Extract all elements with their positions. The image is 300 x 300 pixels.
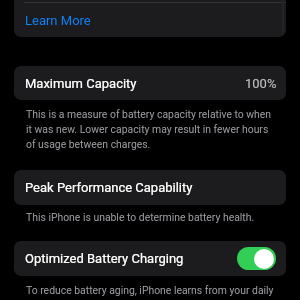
staticText: 100% [245,76,277,91]
button[interactable]: Learn More [14,0,286,37]
button[interactable]: Maximum Capacity [14,66,286,100]
staticText: This is a measure of battery capacity re… [26,108,275,150]
button[interactable]: Peak Performance Capability [14,170,286,205]
staticText: Peak Performance Capability [25,180,193,195]
button[interactable]: Optimized Battery Charging toggle [237,247,276,270]
staticText: To reduce battery aging, iPhone learns f… [26,284,275,300]
staticText: Maximum Capacity [25,76,137,91]
staticText: This iPhone is unable to determine batte… [26,211,255,223]
staticText: Learn More [25,13,91,28]
staticText: Optimized Battery Charging [25,251,184,266]
